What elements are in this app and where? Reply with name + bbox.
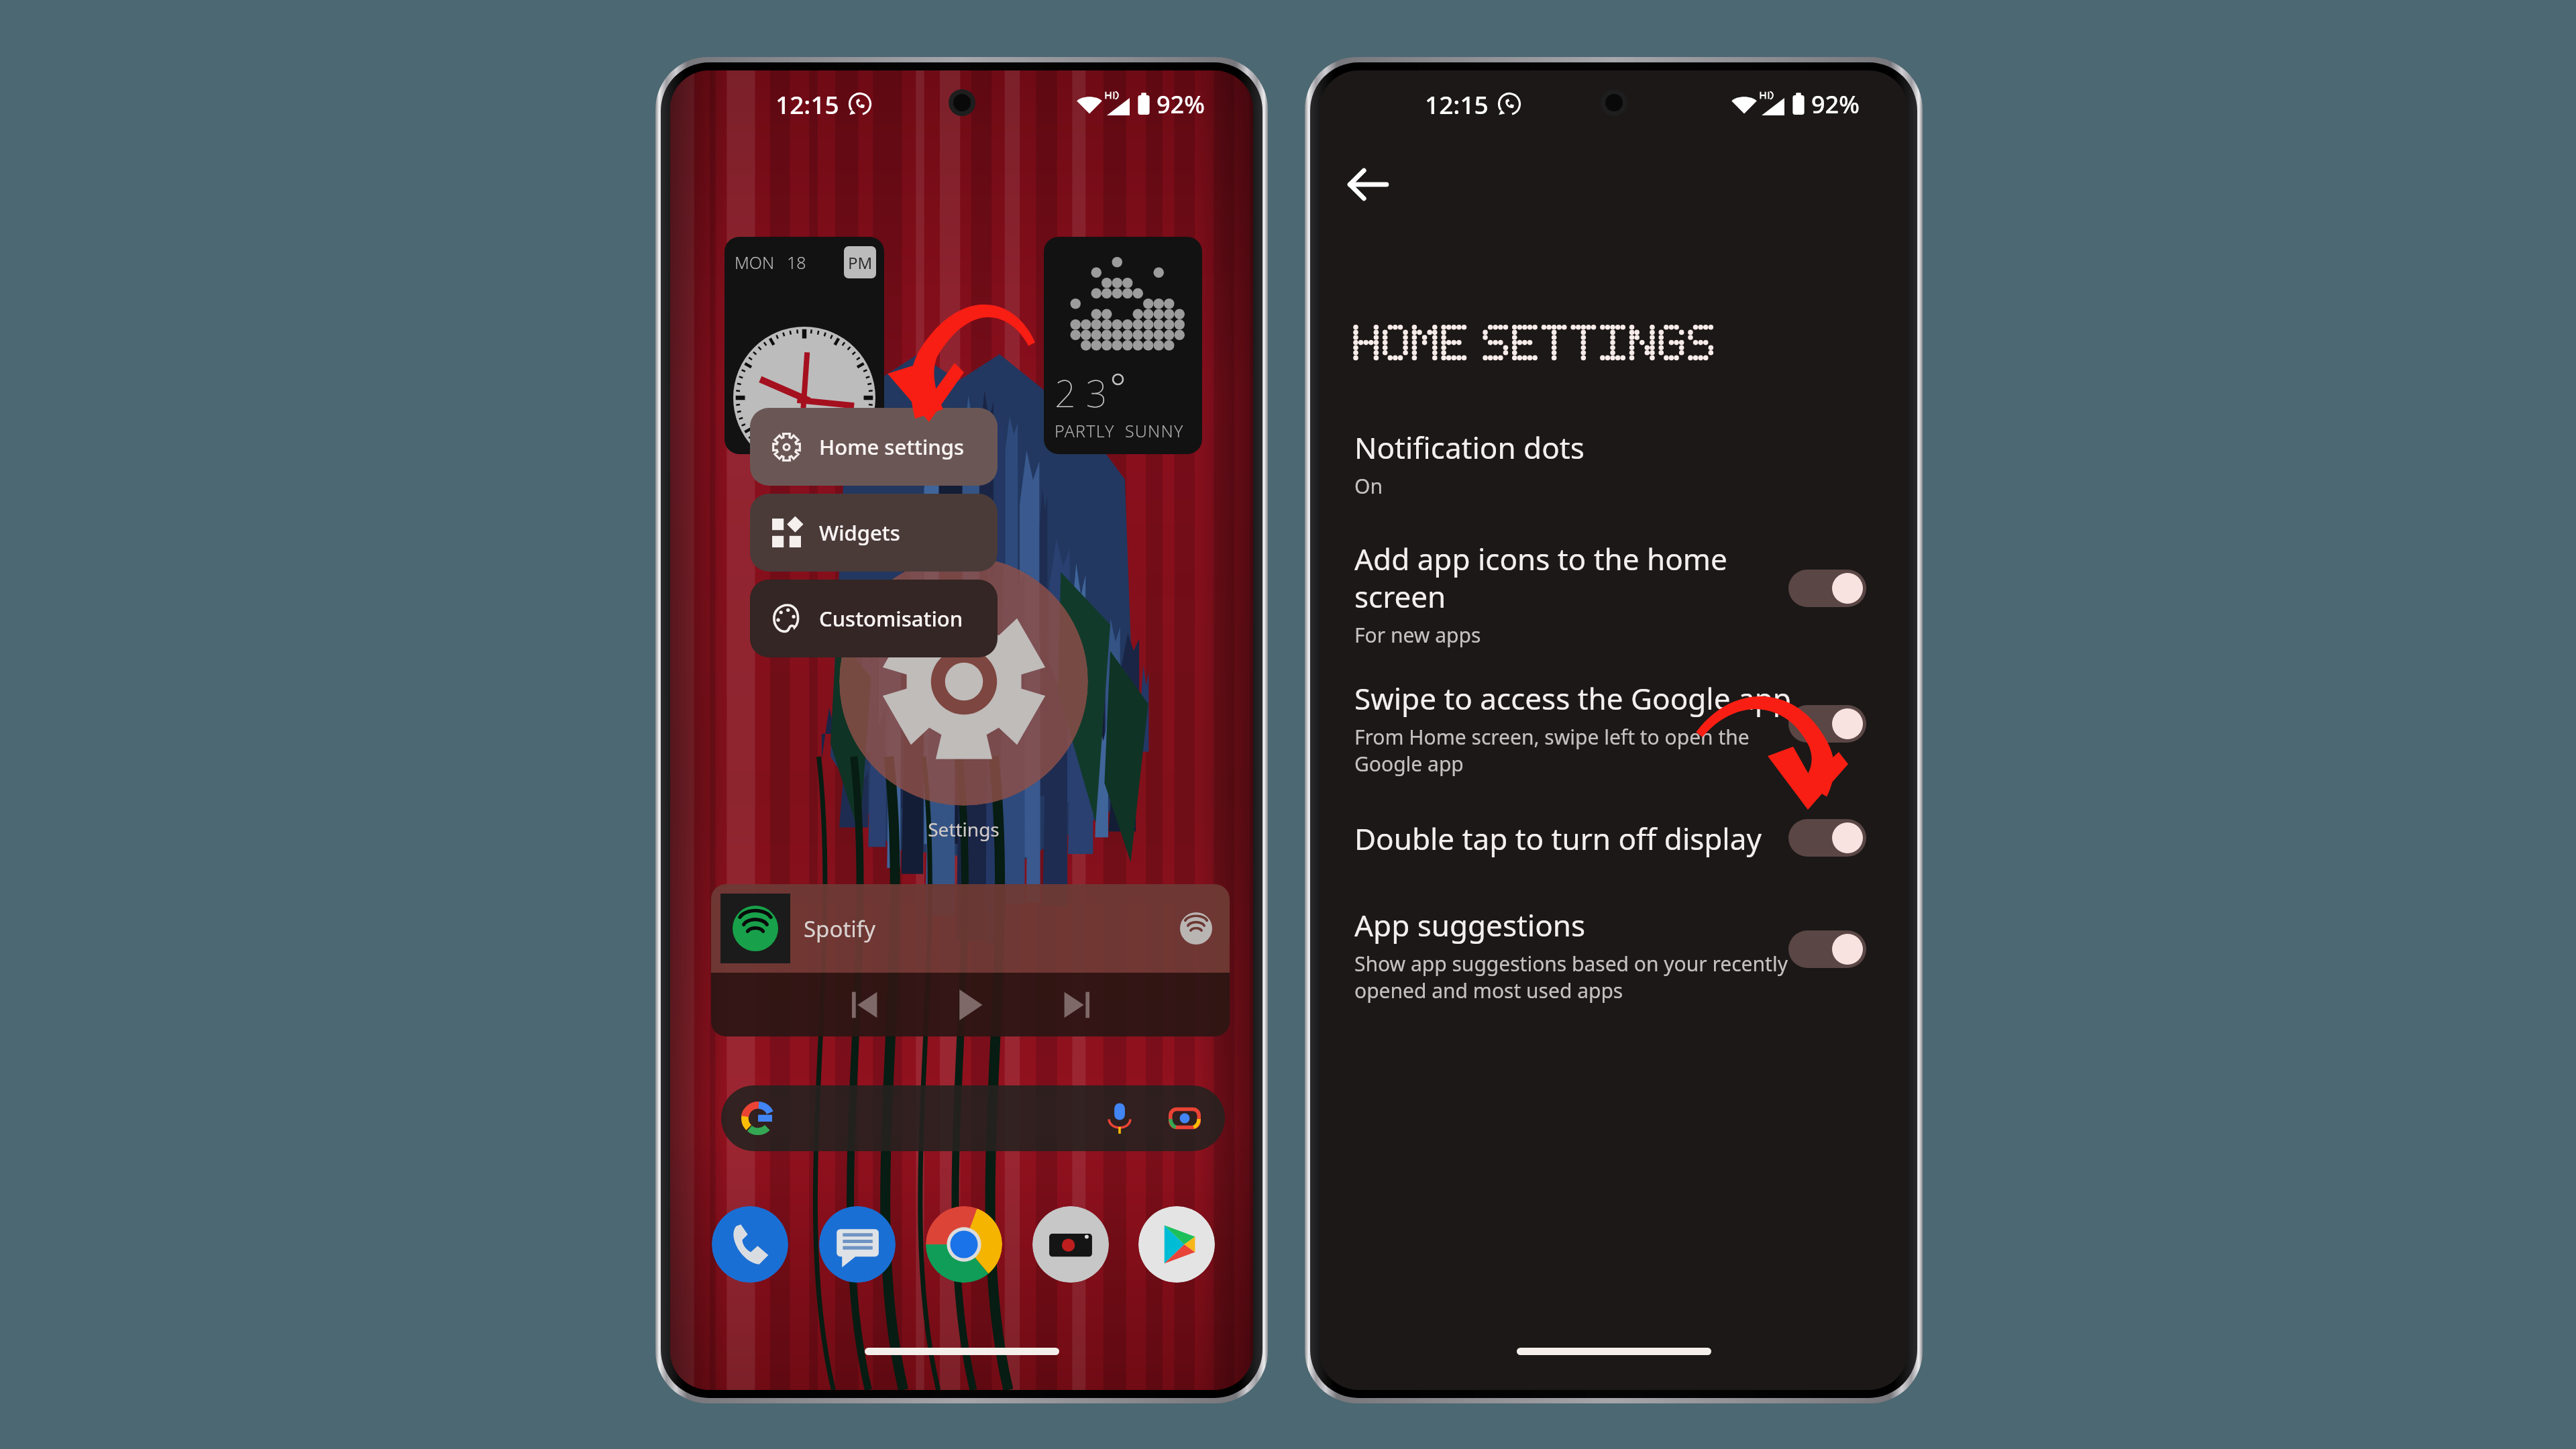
- button[interactable]: Google Lens: [1169, 1102, 1201, 1134]
- staticText: Add app icons to the home screen: [1354, 539, 1727, 616]
- button[interactable]: Spotify: [711, 884, 1230, 1036]
- button[interactable]: Home settings: [750, 408, 998, 486]
- button[interactable]: Phone: [712, 1206, 788, 1283]
- button[interactable]: Settings app: [839, 557, 1088, 806]
- staticText: App suggestions: [1354, 905, 1586, 945]
- staticText: Home settings: [819, 433, 965, 461]
- button[interactable]: Swipe to access the Google app: [1788, 705, 1866, 743]
- button[interactable]: Previous track: [849, 990, 879, 1020]
- staticText: For new apps: [1354, 621, 1481, 649]
- staticText: On: [1354, 472, 1383, 500]
- button[interactable]: Customisation: [750, 580, 998, 657]
- staticText: 2 3: [1055, 367, 1108, 418]
- staticText: MON: [735, 251, 775, 274]
- staticText: 92%: [1157, 88, 1205, 121]
- staticText: PM: [848, 252, 873, 274]
- button[interactable]: Notification dots: [1354, 427, 1835, 500]
- staticText: 18: [787, 251, 806, 274]
- staticText: 92%: [1811, 88, 1860, 121]
- staticText: Show app suggestions based on your recen…: [1354, 950, 1788, 1004]
- button[interactable]: Add app icons to the home screen: [1788, 570, 1866, 607]
- button[interactable]: Messages: [819, 1206, 896, 1283]
- staticText: Notification dots: [1354, 427, 1585, 468]
- staticText: 12:15: [775, 87, 839, 121]
- staticText: 12:15: [1425, 87, 1489, 121]
- button[interactable]: Swipe to access the Google app: [1354, 678, 1835, 777]
- staticText: From Home screen, swipe left to open the…: [1354, 723, 1750, 777]
- button[interactable]: Camera: [1032, 1206, 1109, 1283]
- button[interactable]: App suggestions: [1354, 905, 1835, 1004]
- staticText: Spotify: [804, 914, 875, 944]
- button[interactable]: Next track: [1063, 990, 1092, 1020]
- button[interactable]: Double tap to turn off display: [1788, 819, 1866, 857]
- button[interactable]: App suggestions: [1788, 930, 1866, 968]
- button[interactable]: Play: [958, 989, 983, 1020]
- button[interactable]: Widgets: [750, 494, 998, 572]
- button[interactable]: Play Store: [1138, 1206, 1215, 1283]
- button[interactable]: Back: [1333, 150, 1403, 219]
- staticText: Double tap to turn off display: [1354, 818, 1762, 859]
- staticText: Settings: [839, 816, 1088, 842]
- button[interactable]: Voice search: [1108, 1102, 1132, 1135]
- button[interactable]: Chrome: [926, 1206, 1002, 1283]
- staticText: Swipe to access the Google app: [1354, 678, 1791, 718]
- staticText: Customisation: [819, 604, 963, 633]
- staticText: Widgets: [819, 519, 900, 547]
- button[interactable]: Add app icons to the home screen: [1354, 539, 1835, 649]
- button[interactable]: Google Search: [721, 1085, 1225, 1151]
- button[interactable]: Google Search: [741, 1102, 775, 1135]
- button[interactable]: Double tap to turn off display: [1354, 818, 1835, 859]
- staticText: PARTLY SUNNY: [1055, 419, 1184, 442]
